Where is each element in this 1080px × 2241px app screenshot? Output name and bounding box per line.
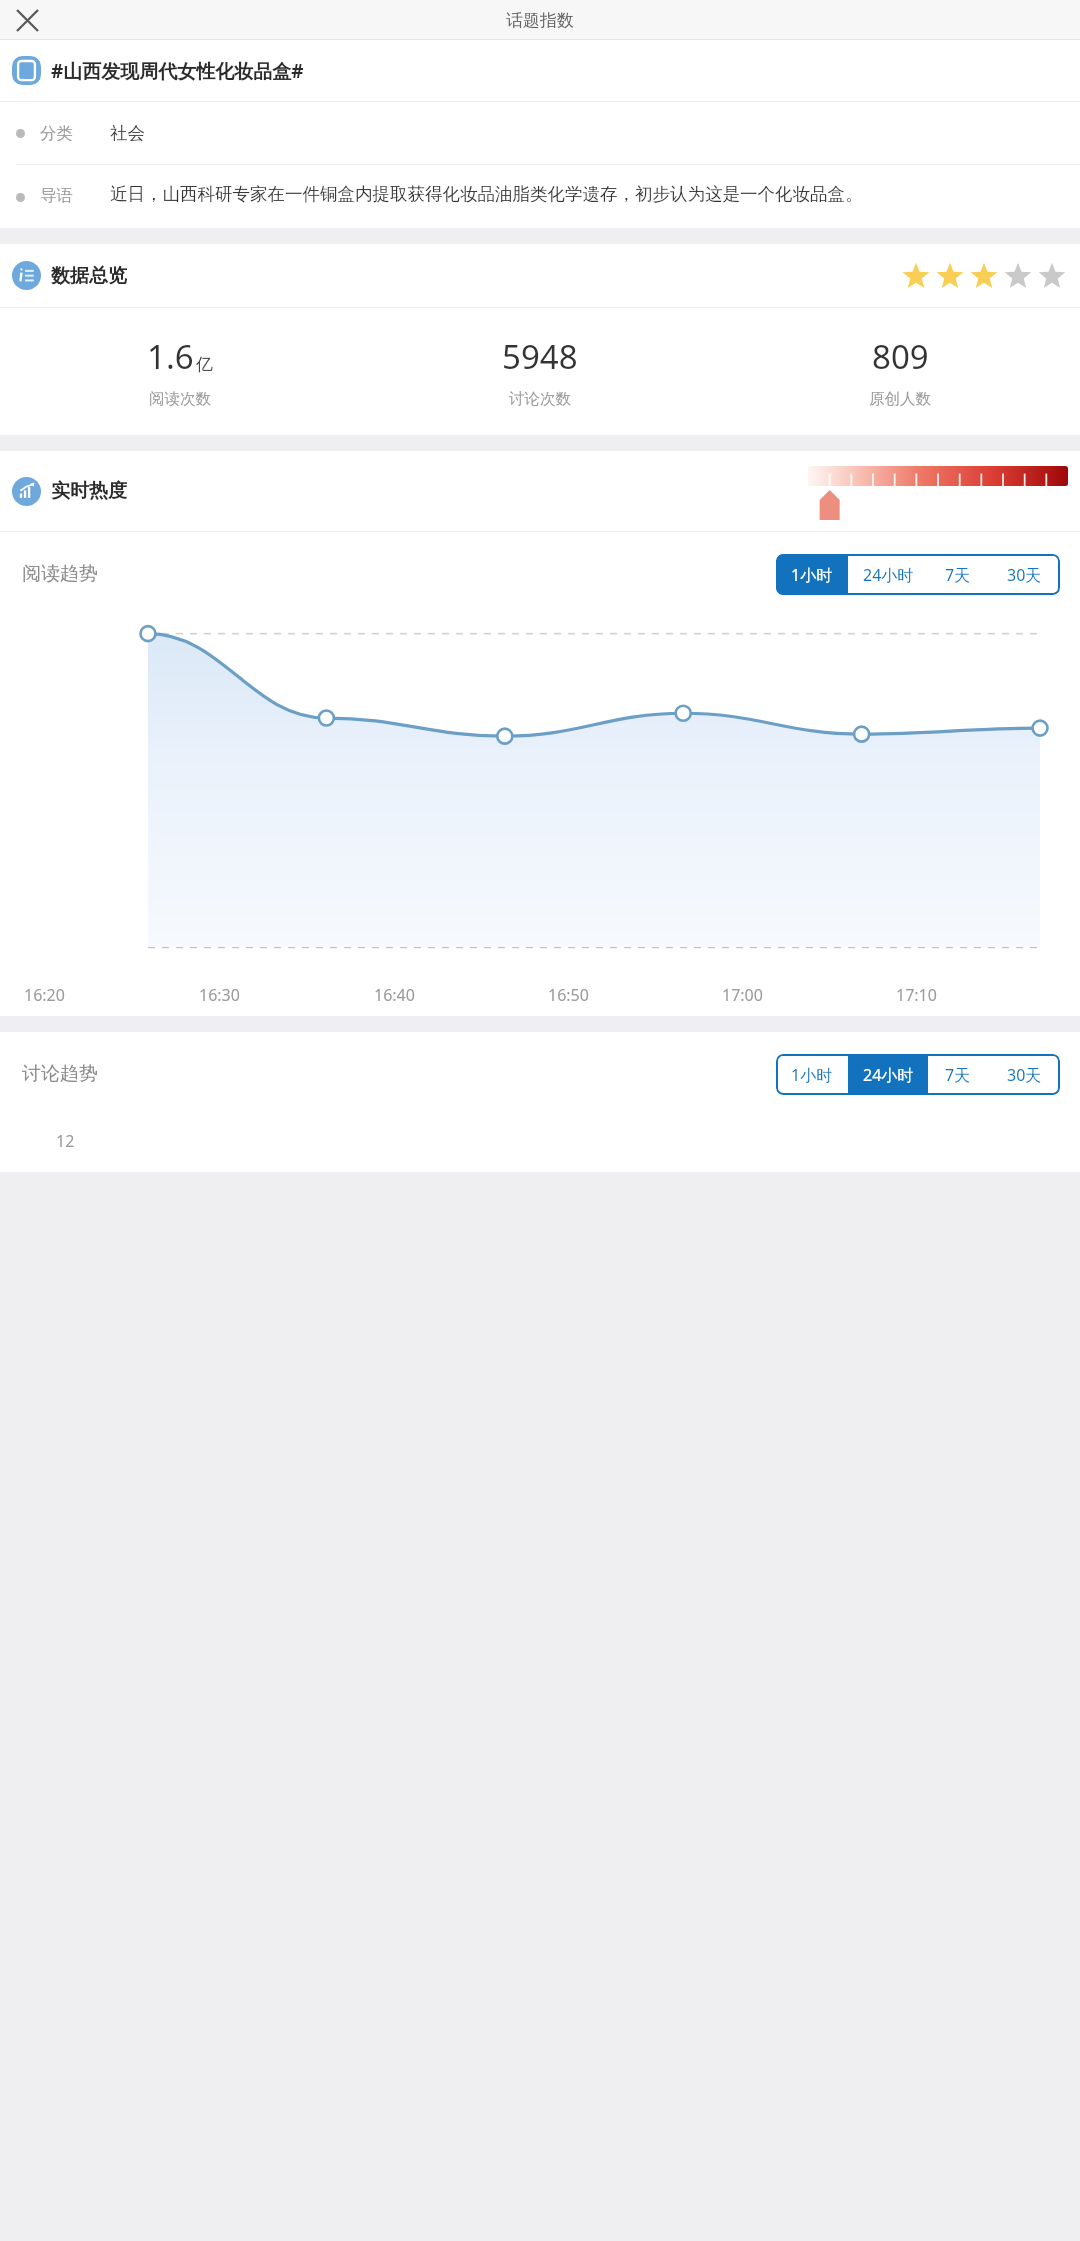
- staticText: 17:10: [896, 984, 1070, 1006]
- staticText: 话题指数: [506, 10, 574, 31]
- button[interactable]: 7天: [928, 554, 988, 595]
- staticText: 30天: [1007, 564, 1042, 586]
- staticText: 16:40: [374, 984, 548, 1006]
- other: 实时热度: [808, 460, 1068, 522]
- button[interactable]: 30天: [988, 554, 1060, 595]
- button[interactable]: Close: [10, 3, 44, 37]
- staticText: 阅读次数: [149, 389, 211, 409]
- staticText: 16:30: [199, 984, 374, 1006]
- staticText: 讨论次数: [509, 389, 571, 409]
- staticText: 16:50: [548, 984, 722, 1006]
- button[interactable]: 24小时: [848, 554, 928, 595]
- button[interactable]: 1小时: [776, 554, 848, 595]
- staticText: 12: [56, 1130, 75, 1152]
- staticText: 近日，山西科研专家在一件铜盒内提取获得化妆品油脂类化学遗存，初步认为这是一个化妆…: [110, 183, 863, 205]
- staticText: 社会: [110, 122, 145, 144]
- staticText: 5948: [502, 334, 578, 379]
- staticText: 24小时: [863, 564, 914, 586]
- staticText: 7天: [945, 564, 971, 586]
- staticText: 809: [872, 334, 929, 379]
- staticText: 1小时: [791, 564, 833, 586]
- staticText: 导语: [40, 185, 102, 206]
- button[interactable]: #山西发现周代女性化妆品盒#: [0, 40, 1080, 101]
- button[interactable]: 30天: [988, 1054, 1060, 1095]
- staticText: 1小时: [791, 1064, 833, 1086]
- staticText: 24小时: [863, 1064, 914, 1086]
- staticText: 17:00: [722, 984, 896, 1006]
- button[interactable]: 24小时: [848, 1054, 928, 1095]
- staticText: 讨论趋势: [22, 1062, 98, 1086]
- staticText: 数据总览: [51, 264, 127, 288]
- staticText: 实时热度: [51, 479, 127, 503]
- button[interactable]: 7天: [928, 1054, 988, 1095]
- staticText: 亿: [196, 354, 213, 375]
- button[interactable]: 1小时: [776, 1054, 848, 1095]
- staticText: 1.6: [147, 334, 194, 379]
- staticText: 30天: [1007, 1064, 1042, 1086]
- staticText: #山西发现周代女性化妆品盒#: [51, 58, 304, 84]
- staticText: 分类: [40, 123, 102, 144]
- staticText: 7天: [945, 1064, 971, 1086]
- staticText: 阅读趋势: [22, 562, 98, 586]
- staticText: 原创人数: [869, 389, 931, 409]
- staticText: 16:20: [24, 984, 199, 1006]
